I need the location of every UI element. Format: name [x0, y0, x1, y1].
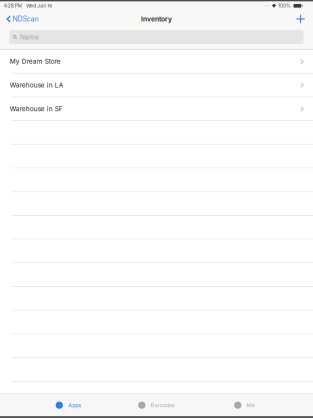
button[interactable]: Me [200, 394, 288, 416]
button[interactable]: My Dream Store [0, 50, 313, 74]
staticText: Warehouse in LA [10, 81, 64, 89]
staticText: NDScan [13, 15, 39, 23]
button[interactable]: Warehouse in SF [0, 97, 313, 121]
staticText: Name [20, 33, 39, 41]
button[interactable]: NDScan [0, 10, 44, 28]
button[interactable]: Warehouse in LA [0, 74, 313, 97]
staticText: My Dream Store [10, 57, 61, 65]
button[interactable]: Barcodes [112, 394, 200, 416]
button[interactable]: Add [290, 10, 313, 28]
staticText: Inventory [141, 15, 172, 23]
staticText: Apps [68, 402, 81, 408]
staticText: 4:28 PM [4, 3, 22, 9]
staticText: Warehouse in SF [10, 105, 63, 113]
staticText: Wed Jan 16 [26, 3, 52, 9]
button[interactable]: Apps [24, 394, 112, 416]
staticText: Barcodes [151, 402, 175, 408]
staticText: 100% [278, 3, 291, 9]
staticText: Me [247, 402, 255, 408]
